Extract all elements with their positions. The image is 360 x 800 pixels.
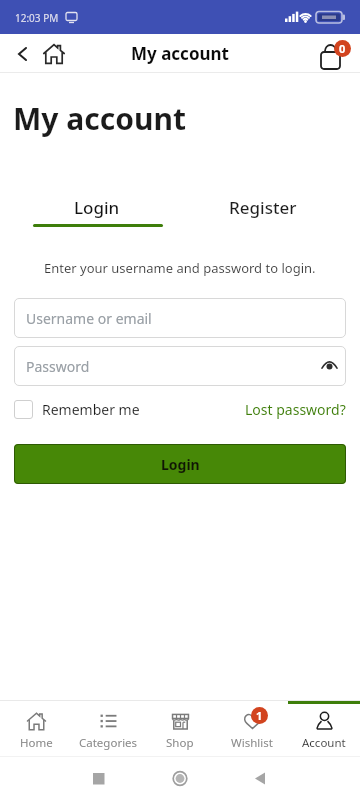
button[interactable]: Username or email — [14, 298, 346, 338]
staticText: Login — [161, 455, 200, 474]
staticText: Wishlist — [231, 735, 273, 751]
staticText: Home — [20, 735, 53, 751]
staticText: Username or email — [26, 309, 152, 328]
staticText: Password — [26, 357, 90, 376]
staticText: My account — [131, 42, 229, 65]
staticText: 1 — [256, 708, 263, 723]
button[interactable]: Login — [14, 444, 346, 484]
button[interactable]: Register — [180, 192, 346, 222]
staticText: 0 — [339, 41, 346, 56]
button[interactable]: Account — [288, 700, 360, 756]
button[interactable]: Categories — [72, 700, 144, 756]
staticText: Categories — [79, 735, 138, 751]
staticText: Remember me — [42, 400, 140, 419]
button[interactable]: Password — [14, 346, 346, 386]
button[interactable]: Remember me — [14, 398, 140, 420]
button[interactable]: Shop — [144, 700, 216, 756]
button[interactable]: Wishlist — [216, 700, 288, 756]
staticText: Login — [74, 196, 120, 219]
button[interactable]: Lost password? — [245, 400, 346, 419]
staticText: My account — [13, 98, 186, 139]
staticText: Register — [229, 196, 297, 219]
button[interactable] — [41, 41, 67, 67]
staticText: Account — [302, 735, 346, 751]
button[interactable]: Login — [14, 192, 180, 222]
button[interactable] — [8, 40, 36, 68]
staticText: Shop — [166, 735, 194, 751]
staticText: Lost password? — [245, 400, 346, 419]
staticText: 12:03 PM — [15, 11, 59, 25]
button[interactable]: 0 — [314, 37, 354, 76]
staticText: Enter your username and password to logi… — [44, 259, 316, 277]
button[interactable]: Home — [0, 700, 72, 756]
